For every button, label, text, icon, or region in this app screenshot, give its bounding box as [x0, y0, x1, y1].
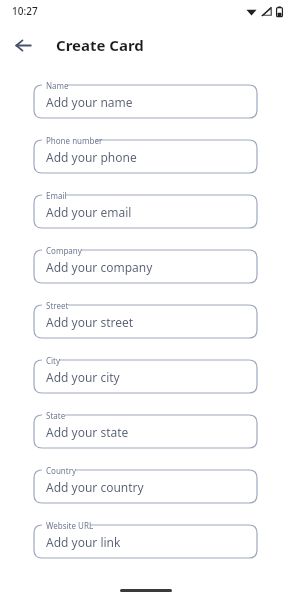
button[interactable]: Street	[34, 300, 257, 338]
button[interactable]: State	[34, 410, 257, 448]
staticText: 10:27	[12, 4, 38, 18]
staticText: Street	[46, 300, 69, 311]
button[interactable]: Back	[8, 30, 38, 60]
button[interactable]: Phone number	[34, 135, 257, 173]
button[interactable]: Country	[34, 465, 257, 503]
staticText: Add your phone	[46, 149, 137, 165]
staticText: Name	[46, 80, 69, 91]
button[interactable]: Name	[34, 80, 257, 118]
staticText: Add your street	[46, 314, 134, 330]
staticText: Email	[46, 190, 67, 201]
staticText: Add your name	[46, 94, 133, 110]
staticText: Add your company	[46, 259, 153, 275]
staticText: Add your country	[46, 479, 144, 495]
staticText: Website URL	[46, 520, 94, 531]
staticText: Add your email	[46, 204, 132, 220]
staticText: Company	[46, 245, 82, 256]
button[interactable]: Email	[34, 190, 257, 228]
button[interactable]: Company	[34, 245, 257, 283]
button[interactable]: City	[34, 355, 257, 393]
staticText: Add your link	[46, 534, 121, 550]
staticText: Phone number	[46, 135, 103, 146]
staticText: City	[46, 355, 61, 366]
staticText: State	[46, 410, 66, 421]
button[interactable]: Website URL	[34, 520, 257, 558]
staticText: Country	[46, 465, 77, 476]
staticText: Add your state	[46, 424, 129, 440]
staticText: Create Card	[56, 35, 144, 55]
staticText: Add your city	[46, 369, 120, 385]
